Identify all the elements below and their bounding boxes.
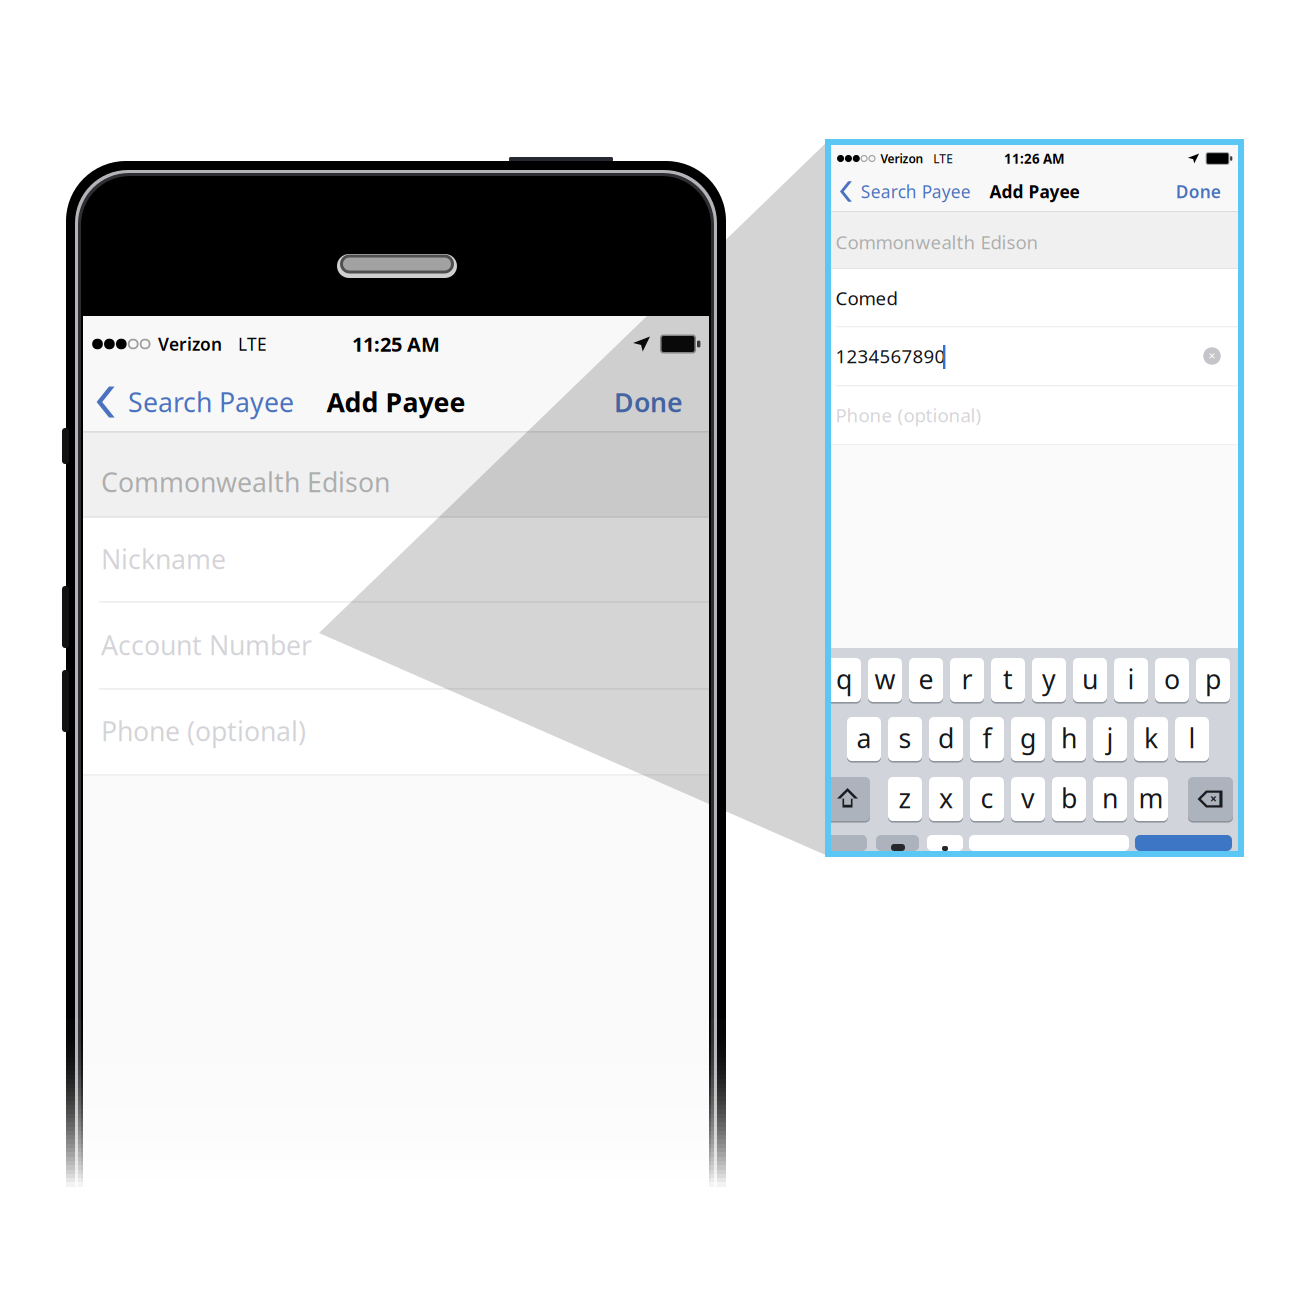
button[interactable]: x <box>0 0 1302 1302</box>
staticText: r <box>961 661 972 697</box>
button[interactable]: w <box>0 0 1302 1302</box>
button[interactable]: v <box>0 0 1302 1302</box>
button[interactable]: q <box>0 0 1302 1302</box>
staticText: m <box>1138 780 1163 816</box>
staticText: Comed <box>835 286 897 310</box>
button[interactable]: c <box>0 0 1302 1302</box>
staticText: f <box>982 720 991 756</box>
staticText: Phone (optional) <box>101 713 306 749</box>
staticText: x <box>939 780 953 816</box>
staticText: Search Payee <box>128 384 294 420</box>
staticText: ✕ <box>1208 351 1216 361</box>
staticText: b <box>1061 780 1077 816</box>
staticText: q <box>836 661 852 697</box>
button[interactable]: p <box>0 0 1302 1302</box>
staticText: e <box>918 661 933 697</box>
staticText: Verizon <box>880 150 923 166</box>
staticText: Verizon <box>158 332 222 355</box>
button[interactable]: n <box>0 0 1302 1302</box>
button[interactable]: a <box>0 0 1302 1302</box>
staticText: n <box>1102 780 1118 816</box>
staticText: 11:25 AM <box>352 331 440 357</box>
button[interactable]: f <box>0 0 1302 1302</box>
staticText: g <box>1020 720 1036 756</box>
button[interactable]: y <box>0 0 1302 1302</box>
staticText: h <box>1061 720 1077 756</box>
button[interactable]: u <box>0 0 1302 1302</box>
staticText: × <box>1210 790 1217 806</box>
button[interactable]: l <box>0 0 1302 1302</box>
staticText: y <box>1042 661 1056 697</box>
button[interactable]: Search Payee <box>0 0 1302 1302</box>
staticText: Add Payee <box>989 180 1079 203</box>
staticText: c <box>980 780 993 816</box>
button[interactable]: k <box>0 0 1302 1302</box>
button[interactable]: g <box>0 0 1302 1302</box>
button[interactable]: Delete <box>0 0 1302 1302</box>
button[interactable]: o <box>0 0 1302 1302</box>
staticText: l <box>1188 720 1195 756</box>
staticText: 11:26 AM <box>1004 150 1065 167</box>
staticText: Account Number <box>101 627 312 663</box>
staticText: p <box>1205 661 1221 697</box>
button[interactable]: s <box>0 0 1302 1302</box>
staticText: Search Payee <box>861 180 971 203</box>
staticText: a <box>856 720 871 756</box>
staticText: d <box>938 720 954 756</box>
button[interactable]: h <box>0 0 1302 1302</box>
staticText: Phone (optional) <box>835 403 981 427</box>
button[interactable]: z <box>0 0 1302 1302</box>
staticText: o <box>1164 661 1180 697</box>
button[interactable]: e <box>0 0 1302 1302</box>
staticText: 1234567890 <box>835 344 945 368</box>
button[interactable]: j <box>0 0 1302 1302</box>
staticText: z <box>898 780 911 816</box>
staticText: Done <box>1176 180 1221 203</box>
staticText: Done <box>614 384 683 420</box>
staticText: w <box>874 661 895 697</box>
staticText: u <box>1082 661 1098 697</box>
button[interactable]: m <box>0 0 1302 1302</box>
button[interactable]: Done <box>0 0 1302 1302</box>
staticText: v <box>1021 780 1035 816</box>
button[interactable]: b <box>0 0 1302 1302</box>
staticText: Commonwealth Edison <box>835 230 1038 254</box>
button[interactable]: t <box>0 0 1302 1302</box>
staticText: Nickname <box>101 541 226 577</box>
button[interactable]: Clear text <box>0 0 1302 1302</box>
button[interactable]: Done <box>0 0 1302 1302</box>
button[interactable]: r <box>0 0 1302 1302</box>
button[interactable]: i <box>0 0 1302 1302</box>
staticText: i <box>1127 661 1134 697</box>
staticText: s <box>898 720 911 756</box>
button[interactable]: Shift <box>0 0 1302 1302</box>
staticText: t <box>1003 661 1013 697</box>
staticText: Add Payee <box>326 384 465 420</box>
staticText: LTE <box>933 150 953 166</box>
button[interactable]: Search Payee <box>0 0 1302 1302</box>
staticText: j <box>1106 720 1113 756</box>
staticText: k <box>1144 720 1158 756</box>
staticText: Commonwealth Edison <box>101 464 390 500</box>
staticText: LTE <box>238 332 267 355</box>
button[interactable]: d <box>0 0 1302 1302</box>
